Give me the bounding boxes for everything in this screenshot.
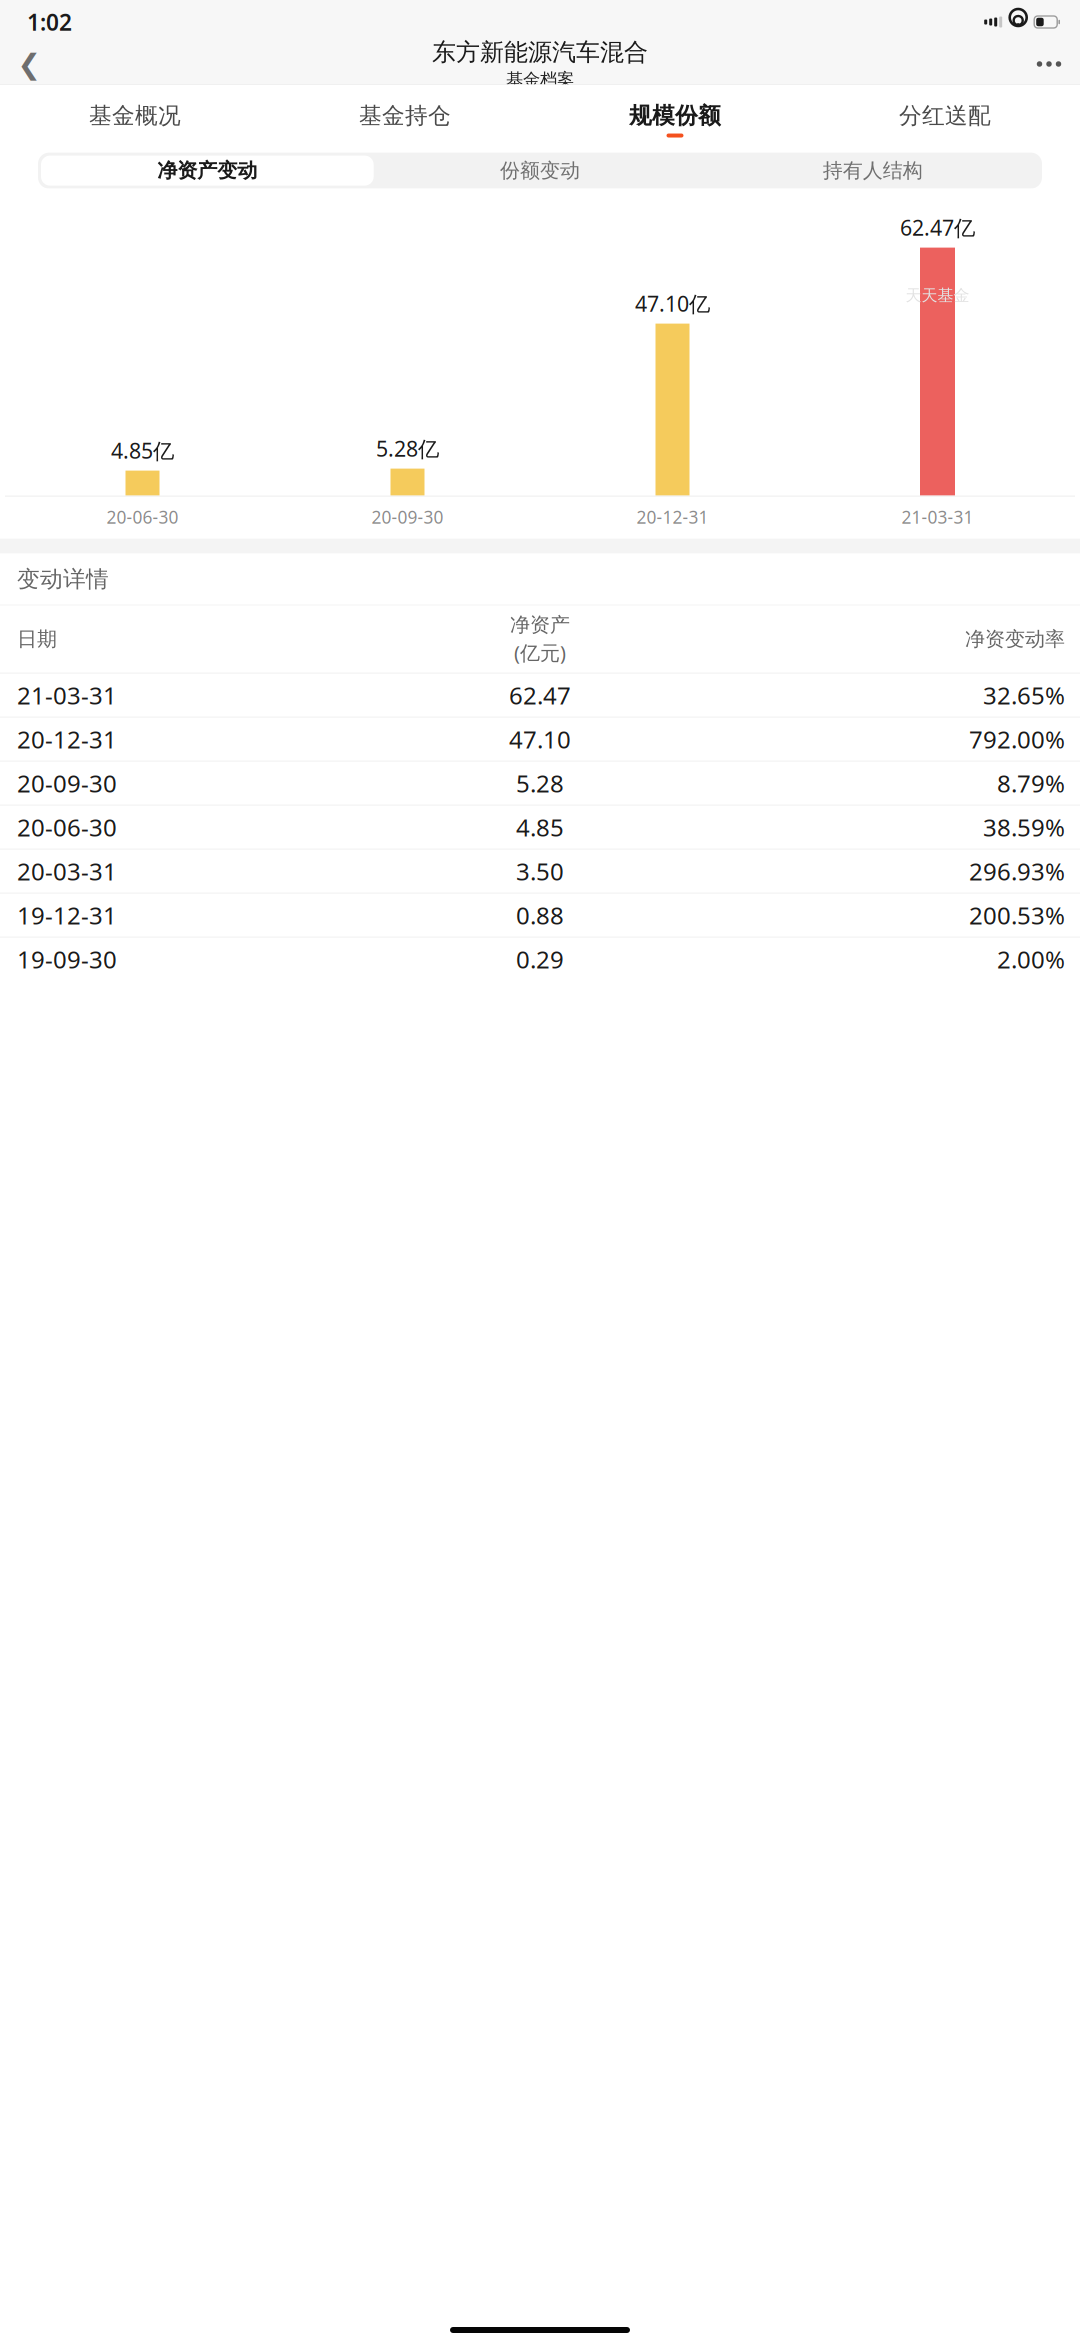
staticText: 62.47亿 (900, 213, 975, 242)
staticText: 分红送配 (899, 102, 991, 129)
staticText: 2.00% (997, 943, 1065, 975)
staticText: 296.93% (969, 855, 1065, 887)
staticText: 200.53% (969, 899, 1065, 931)
staticText: 0.88 (516, 899, 564, 931)
staticText: 792.00% (969, 723, 1065, 755)
staticText: 东方新能源汽车混合 (432, 38, 648, 67)
staticText: 21-03-31 (901, 506, 973, 529)
staticText: 基金概况 (89, 102, 181, 129)
staticText: 4.85亿 (111, 436, 174, 465)
button[interactable]: 规模份额 (540, 88, 810, 143)
button[interactable]: 份额变动 (374, 156, 706, 186)
staticText: 20-09-30 (371, 506, 443, 529)
staticText: 日期 (17, 627, 57, 651)
staticText: 20-12-31 (17, 723, 117, 755)
staticText: 20-03-31 (17, 855, 117, 887)
staticText: 净资产 (510, 613, 570, 637)
button[interactable]: More options (1023, 41, 1075, 87)
staticText: ❮ (17, 48, 40, 80)
staticText: (亿元) (514, 639, 566, 666)
staticText: 4.85 (516, 811, 564, 843)
staticText: 变动详情 (17, 565, 109, 593)
button[interactable]: 基金持仓 (270, 88, 540, 143)
staticText: 38.59% (983, 811, 1065, 843)
staticText: 持有人结构 (823, 158, 923, 183)
staticText: 20-09-30 (17, 767, 117, 799)
staticText: 基金档案 (506, 69, 574, 90)
button[interactable]: Back (5, 41, 53, 87)
staticText: 21-03-31 (17, 679, 117, 711)
staticText: 基金持仓 (359, 102, 451, 129)
staticText: 8.79% (997, 767, 1065, 799)
staticText: 3.50 (516, 855, 564, 887)
button[interactable]: 分红送配 (810, 88, 1080, 143)
staticText: 净资变动率 (965, 627, 1065, 651)
staticText: 20-12-31 (636, 506, 708, 529)
button[interactable]: 净资产变动 (41, 156, 374, 186)
staticText: 19-09-30 (17, 943, 117, 975)
button[interactable]: 持有人结构 (706, 156, 1039, 186)
staticText: 份额变动 (500, 158, 580, 183)
staticText: 净资产变动 (157, 158, 257, 183)
staticText: 47.10亿 (635, 289, 710, 318)
staticText: 天天基金 (905, 286, 969, 305)
staticText: 62.47 (509, 679, 571, 711)
staticText: 5.28 (516, 767, 564, 799)
staticText: 1:02 (27, 7, 72, 37)
staticText: 32.65% (983, 679, 1065, 711)
staticText: 5.28亿 (376, 434, 439, 463)
staticText: 47.10 (509, 723, 571, 755)
staticText: 19-12-31 (17, 899, 117, 931)
staticText: 0.29 (516, 943, 564, 975)
staticText: 20-06-30 (17, 811, 117, 843)
button[interactable]: 基金概况 (0, 88, 270, 143)
staticText: 规模份额 (629, 102, 721, 129)
staticText: 20-06-30 (106, 506, 178, 529)
